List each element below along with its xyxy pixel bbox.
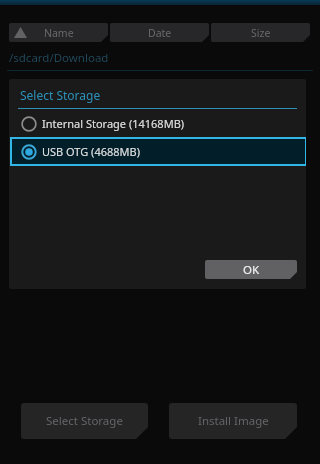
staticText: Install Image [198,413,269,429]
button[interactable]: Install Image [169,403,297,439]
staticText: Internal Storage (14168MB) [42,116,185,131]
button[interactable]: USB OTG (4688MB) [10,137,306,166]
staticText: Size [251,26,271,40]
staticText: Select Storage [20,87,101,103]
staticText: Select Storage [46,413,123,429]
staticText: Date [148,26,172,40]
staticText: Name [44,26,74,40]
staticText: OK [243,262,260,278]
staticText: USB OTG (4688MB) [42,144,141,159]
button[interactable]: Size [211,23,310,42]
staticText: /sdcard/Download [9,50,109,66]
button[interactable]: Date [110,23,209,42]
button[interactable]: OK [205,260,297,279]
other: Sort ascending by name [14,27,27,38]
button[interactable]: Internal Storage (14168MB) [10,109,306,138]
button[interactable]: Select Storage [21,403,148,439]
button[interactable]: Name [9,23,108,42]
